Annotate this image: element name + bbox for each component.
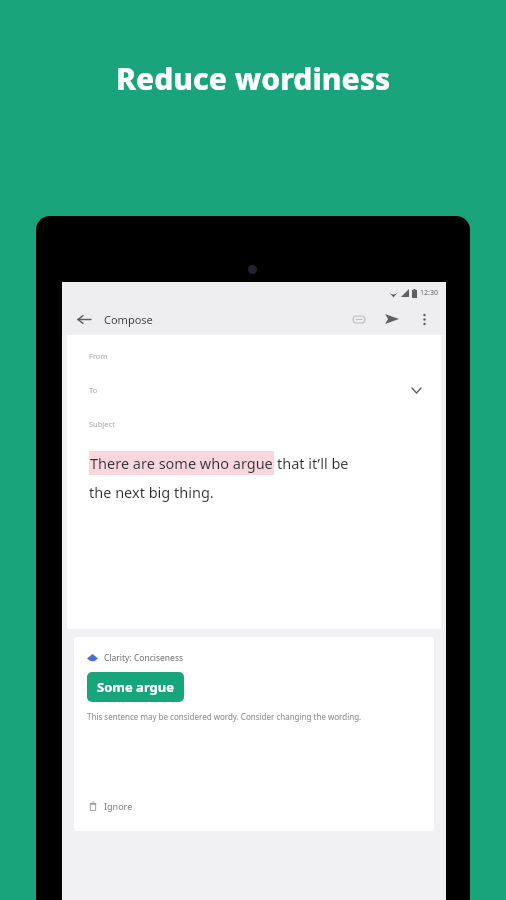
staticText: 12:30: [420, 288, 438, 298]
staticText: From: [89, 351, 108, 361]
staticText: Ignore: [104, 800, 133, 812]
staticText: that it’ll be: [277, 453, 349, 473]
button[interactable]: Expand recipients: [407, 381, 425, 399]
button[interactable]: Attach: [348, 308, 370, 330]
staticText: Some argue: [97, 678, 174, 696]
button[interactable]: Send: [381, 308, 403, 330]
staticText: Reduce wordiness: [116, 58, 391, 99]
staticText: Subject: [89, 419, 115, 429]
button[interactable]: Clarity: Conciseness: [74, 637, 434, 831]
button[interactable]: More options: [413, 308, 435, 330]
button[interactable]: Some argue: [87, 672, 184, 702]
staticText: the next big thing.: [89, 482, 214, 502]
staticText: To: [89, 385, 98, 395]
button[interactable]: Back: [73, 308, 95, 330]
staticText: Clarity: Conciseness: [104, 652, 184, 664]
staticText: This sentence may be considered wordy. C…: [87, 711, 362, 722]
button[interactable]: Ignore: [87, 797, 135, 815]
staticText: There are some who argue: [90, 453, 273, 473]
staticText: Compose: [104, 312, 153, 327]
